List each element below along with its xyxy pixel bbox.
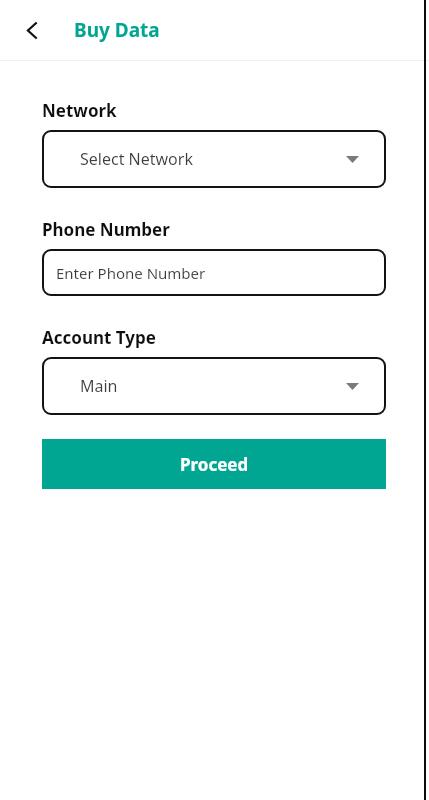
- button[interactable]: Proceed: [42, 439, 386, 489]
- staticText: Network: [42, 99, 117, 122]
- staticText: Phone Number: [42, 218, 170, 241]
- staticText: Buy Data: [74, 17, 160, 43]
- staticText: Account Type: [42, 326, 156, 349]
- staticText: Enter Phone Number: [56, 263, 206, 283]
- button[interactable]: Account type: [42, 357, 386, 415]
- button[interactable]: Select Network: [42, 130, 386, 188]
- button[interactable]: Back: [9, 7, 55, 53]
- staticText: Select Network: [80, 148, 193, 170]
- staticText: Proceed: [180, 453, 249, 476]
- staticText: Main: [80, 375, 118, 397]
- button[interactable]: Enter Phone Number: [42, 249, 386, 296]
